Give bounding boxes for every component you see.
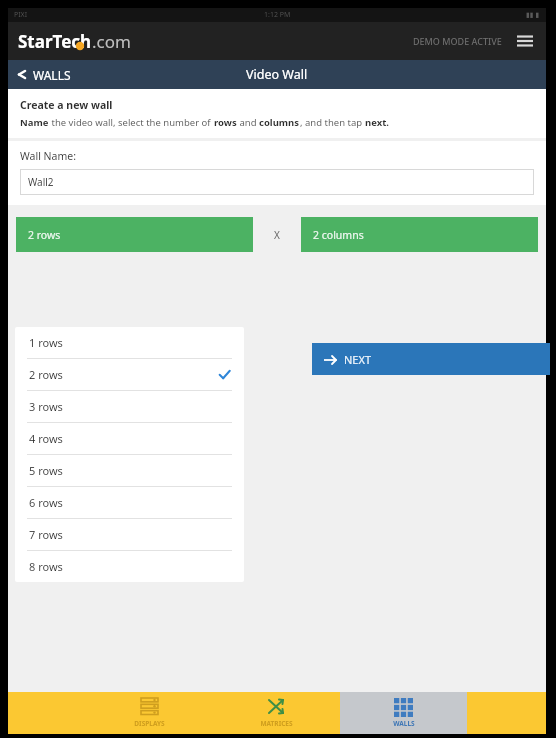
button[interactable]: WALLS bbox=[8, 60, 81, 89]
staticText: .com bbox=[92, 30, 131, 53]
staticText: 1:12 PM bbox=[264, 10, 291, 20]
button[interactable]: Menu bbox=[514, 30, 536, 52]
staticText: WALLS bbox=[393, 719, 415, 728]
staticText: 8 rows bbox=[29, 559, 63, 574]
staticText: Create a new wall bbox=[20, 98, 113, 112]
staticText: 2 rows bbox=[29, 367, 63, 382]
staticText: Name bbox=[20, 116, 49, 129]
button[interactable]: 2 rows bbox=[15, 359, 244, 390]
staticText: NEXT bbox=[344, 352, 372, 367]
button[interactable]: NEXT bbox=[312, 343, 550, 375]
staticText: PIXI bbox=[14, 10, 28, 20]
staticText: 2 rows bbox=[28, 228, 61, 242]
staticText: rows bbox=[214, 116, 237, 129]
button[interactable]: 6 rows bbox=[15, 487, 244, 518]
button[interactable]: 2 rows bbox=[16, 217, 253, 252]
staticText: X bbox=[274, 228, 280, 242]
staticText: and bbox=[237, 116, 259, 129]
staticText: MATRICES bbox=[260, 719, 293, 728]
staticText: the video wall, select the number of bbox=[49, 116, 214, 129]
staticText: Video Wall bbox=[246, 66, 308, 83]
staticText: 4 rows bbox=[29, 431, 63, 446]
staticText: Wall Name: bbox=[20, 149, 77, 163]
button[interactable]: MATRICES bbox=[213, 692, 340, 734]
staticText: Wall2 bbox=[28, 175, 54, 189]
button[interactable]: Wall2 bbox=[20, 169, 534, 195]
staticText: 1 rows bbox=[29, 335, 63, 350]
staticText: , and then tap bbox=[300, 116, 365, 129]
button[interactable]: 3 rows bbox=[15, 391, 244, 422]
staticText: next. bbox=[365, 116, 389, 129]
button[interactable]: 1 rows bbox=[15, 327, 244, 358]
button[interactable]: 2 columns bbox=[301, 217, 538, 252]
staticText: DISPLAYS bbox=[134, 719, 165, 728]
staticText: ▮▮ ▮ bbox=[526, 10, 540, 20]
staticText: 3 rows bbox=[29, 399, 63, 414]
staticText: 2 columns bbox=[313, 228, 364, 242]
staticText: columns bbox=[259, 116, 300, 129]
staticText: StarTech bbox=[18, 30, 92, 53]
button[interactable]: 7 rows bbox=[15, 519, 244, 550]
staticText: WALLS bbox=[33, 67, 71, 83]
button[interactable]: 5 rows bbox=[15, 455, 244, 486]
staticText: DEMO MODE ACTIVE bbox=[413, 35, 502, 47]
button[interactable]: DISPLAYS bbox=[86, 692, 213, 734]
button[interactable]: 8 rows bbox=[15, 551, 244, 582]
staticText: 6 rows bbox=[29, 495, 63, 510]
button[interactable]: 4 rows bbox=[15, 423, 244, 454]
button[interactable]: WALLS bbox=[340, 692, 467, 734]
staticText: 5 rows bbox=[29, 463, 63, 478]
staticText: 7 rows bbox=[29, 527, 63, 542]
